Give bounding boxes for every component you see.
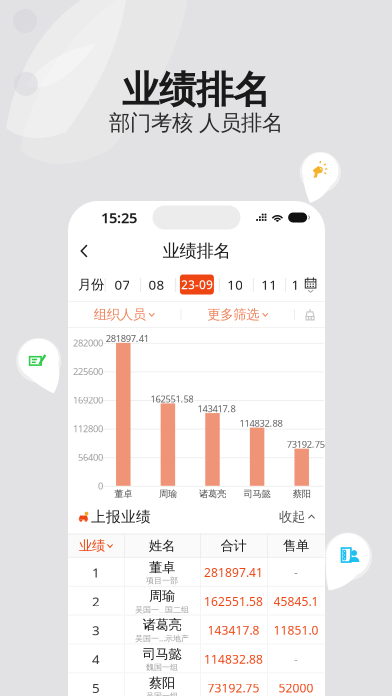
staticText: 上报业绩	[91, 508, 151, 526]
button[interactable]: 业绩	[68, 534, 124, 558]
staticText: 07	[114, 276, 130, 293]
staticText: 蔡阳	[293, 488, 311, 500]
staticText: 收起	[279, 509, 305, 525]
staticText: 282000	[73, 337, 103, 349]
staticText: 吴国一组	[146, 691, 178, 696]
button[interactable]: 23-09	[177, 268, 217, 301]
staticText: 114832.88	[204, 651, 263, 667]
staticText: 112800	[73, 422, 103, 435]
staticText: 11851.0	[273, 622, 318, 638]
staticText: 162551.58	[150, 393, 193, 405]
staticText: 诸葛亮	[199, 488, 226, 500]
staticText: 11	[261, 276, 277, 293]
staticText: 281897.41	[204, 564, 263, 580]
staticText: 281897.41	[106, 332, 149, 345]
button[interactable]: 组织人员	[94, 301, 155, 328]
staticText: 吴国一…国二组	[135, 604, 189, 615]
button[interactable]: 11	[249, 268, 289, 301]
staticText: 1	[291, 276, 299, 293]
staticText: 司马懿	[142, 646, 181, 662]
button[interactable]: 08	[136, 268, 176, 301]
staticText: 10	[227, 276, 243, 293]
button[interactable]: 10	[215, 268, 255, 301]
staticText: 周瑜	[159, 488, 177, 500]
staticText: 52000	[278, 680, 313, 696]
staticText: 169200	[73, 394, 103, 406]
staticText: 魏国一组	[146, 662, 178, 672]
staticText: 部门考核 人员排名	[109, 110, 283, 136]
staticText: 蔡阳	[149, 675, 175, 691]
staticText: 业绩	[79, 538, 105, 554]
button[interactable]: 5	[68, 673, 325, 696]
staticText: 73192.75	[287, 438, 325, 450]
staticText: 业绩排名	[122, 67, 270, 113]
staticText: 0	[98, 480, 103, 492]
button[interactable]: 1	[68, 558, 325, 587]
staticText: 162551.58	[204, 593, 263, 609]
staticText: 23-09	[181, 276, 213, 292]
staticText: 45845.1	[273, 593, 318, 609]
button[interactable]: 选择日期	[300, 268, 322, 301]
staticText: 2	[92, 592, 100, 610]
button[interactable]: 3	[68, 616, 325, 645]
staticText: 73192.75	[207, 680, 259, 696]
staticText: 1	[92, 563, 100, 581]
staticText: 225600	[73, 365, 103, 378]
staticText: 周瑜	[149, 588, 175, 604]
staticText: 售单	[283, 538, 309, 554]
staticText: -	[294, 564, 298, 580]
staticText: 08	[148, 276, 164, 293]
staticText: 司马懿	[244, 488, 271, 500]
staticText: 114832.88	[240, 417, 283, 429]
staticText: 项目一部	[146, 576, 178, 585]
staticText: 董卓	[149, 559, 175, 576]
button[interactable]: 收起	[279, 509, 325, 525]
staticText: 吴国一…示地产	[135, 633, 189, 644]
staticText: 15:25	[101, 208, 137, 227]
button[interactable]: 4	[68, 645, 325, 673]
staticText: 姓名	[149, 538, 175, 554]
staticText: 4	[92, 650, 100, 668]
staticText: 143417.8	[207, 622, 259, 638]
button[interactable]: 清除筛选	[295, 301, 325, 328]
staticText: 143417.8	[197, 402, 235, 415]
staticText: 业绩排名	[162, 240, 230, 262]
staticText: 更多筛选	[207, 306, 259, 323]
staticText: 诸葛亮	[142, 617, 181, 633]
staticText: 董卓	[114, 488, 132, 500]
staticText: -	[294, 651, 298, 667]
staticText: 组织人员	[94, 306, 146, 323]
staticText: 合计	[220, 538, 246, 554]
button[interactable]: 返回	[68, 236, 100, 266]
staticText: 56400	[78, 451, 103, 463]
staticText: 3	[92, 621, 100, 639]
button[interactable]: 07	[102, 268, 142, 301]
staticText: 5	[92, 679, 100, 696]
button[interactable]: 2	[68, 587, 325, 616]
button[interactable]: 更多筛选	[207, 301, 268, 328]
button[interactable]: 1	[275, 268, 315, 301]
staticText: 月份	[78, 276, 104, 293]
